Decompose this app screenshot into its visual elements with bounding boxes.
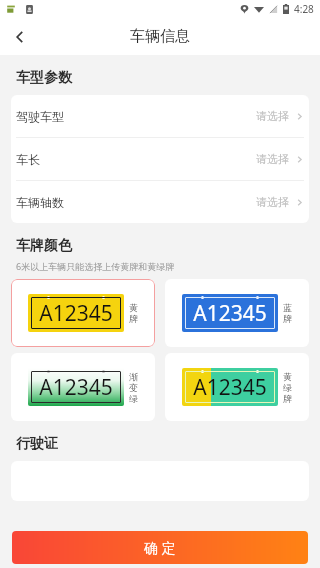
button[interactable]: A12345 (165, 279, 309, 347)
staticText: 车型参数 (16, 69, 72, 87)
staticText: 车牌颜色 (16, 237, 72, 255)
staticText: 6米以上车辆只能选择上传黄牌和黄绿牌 (16, 260, 175, 272)
staticText: A12345 (39, 299, 113, 328)
staticText: 车辆轴数 (16, 195, 64, 210)
staticText: 请选择 (256, 109, 289, 123)
staticText: 渐 (129, 371, 138, 382)
button[interactable]: 驾驶车型 (11, 95, 309, 137)
staticText: 请选择 (256, 195, 289, 209)
button[interactable]: 车长 (11, 138, 309, 180)
button[interactable]: 确 定 (12, 531, 308, 564)
staticText: 车长 (16, 152, 40, 167)
staticText: 行驶证 (16, 435, 58, 453)
staticText: 黄 (129, 302, 138, 313)
staticText: 驾驶车型 (16, 109, 64, 124)
button[interactable]: A12345 (11, 353, 155, 421)
staticText: 变 (129, 382, 138, 393)
staticText: A12345 (193, 373, 267, 402)
staticText: 4:28 (294, 2, 314, 16)
button[interactable]: A12345 (165, 353, 309, 421)
staticText: 车辆信息 (130, 27, 190, 46)
staticText: A12345 (39, 373, 113, 402)
staticText: 牌 (283, 313, 292, 324)
staticText: 牌 (283, 393, 292, 404)
button[interactable]: 返回 (0, 18, 40, 55)
button[interactable]: 车辆轴数 (11, 181, 309, 223)
staticText: 请选择 (256, 152, 289, 166)
staticText: 确 定 (144, 538, 176, 557)
staticText: 绿 (129, 393, 138, 404)
staticText: 牌 (129, 313, 138, 324)
staticText: 绿 (283, 382, 292, 393)
staticText: 黄 (283, 371, 292, 382)
staticText: A12345 (193, 299, 267, 328)
button[interactable]: A12345 (11, 279, 155, 347)
staticText: 蓝 (283, 302, 292, 313)
